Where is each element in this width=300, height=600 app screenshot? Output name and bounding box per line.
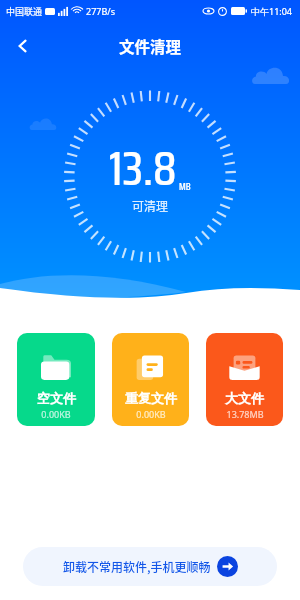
staticText: 13.8 [109,131,177,207]
staticText: 0.00KB [41,408,71,420]
staticText: 重复文件 [125,390,177,406]
staticText: 中国联通 [6,5,43,18]
button[interactable]: 重复文件 [112,333,189,426]
staticText: 中午11:04 [251,5,293,17]
button[interactable]: Back [8,31,38,61]
staticText: 13.78MB [226,408,264,420]
button[interactable]: 空文件 [17,333,95,426]
staticText: 空文件 [37,390,76,406]
button[interactable]: 卸载不常用软件,手机更顺畅 [23,547,277,586]
staticText: 277B/s [86,5,115,17]
staticText: 大文件 [225,390,264,406]
staticText: 0.00KB [136,408,166,420]
staticText: 卸载不常用软件,手机更顺畅 [63,558,211,575]
button[interactable]: 大文件 [206,333,283,426]
staticText: 文件清理 [119,35,182,57]
staticText: 可清理 [132,197,169,214]
staticText: MB [179,179,191,195]
